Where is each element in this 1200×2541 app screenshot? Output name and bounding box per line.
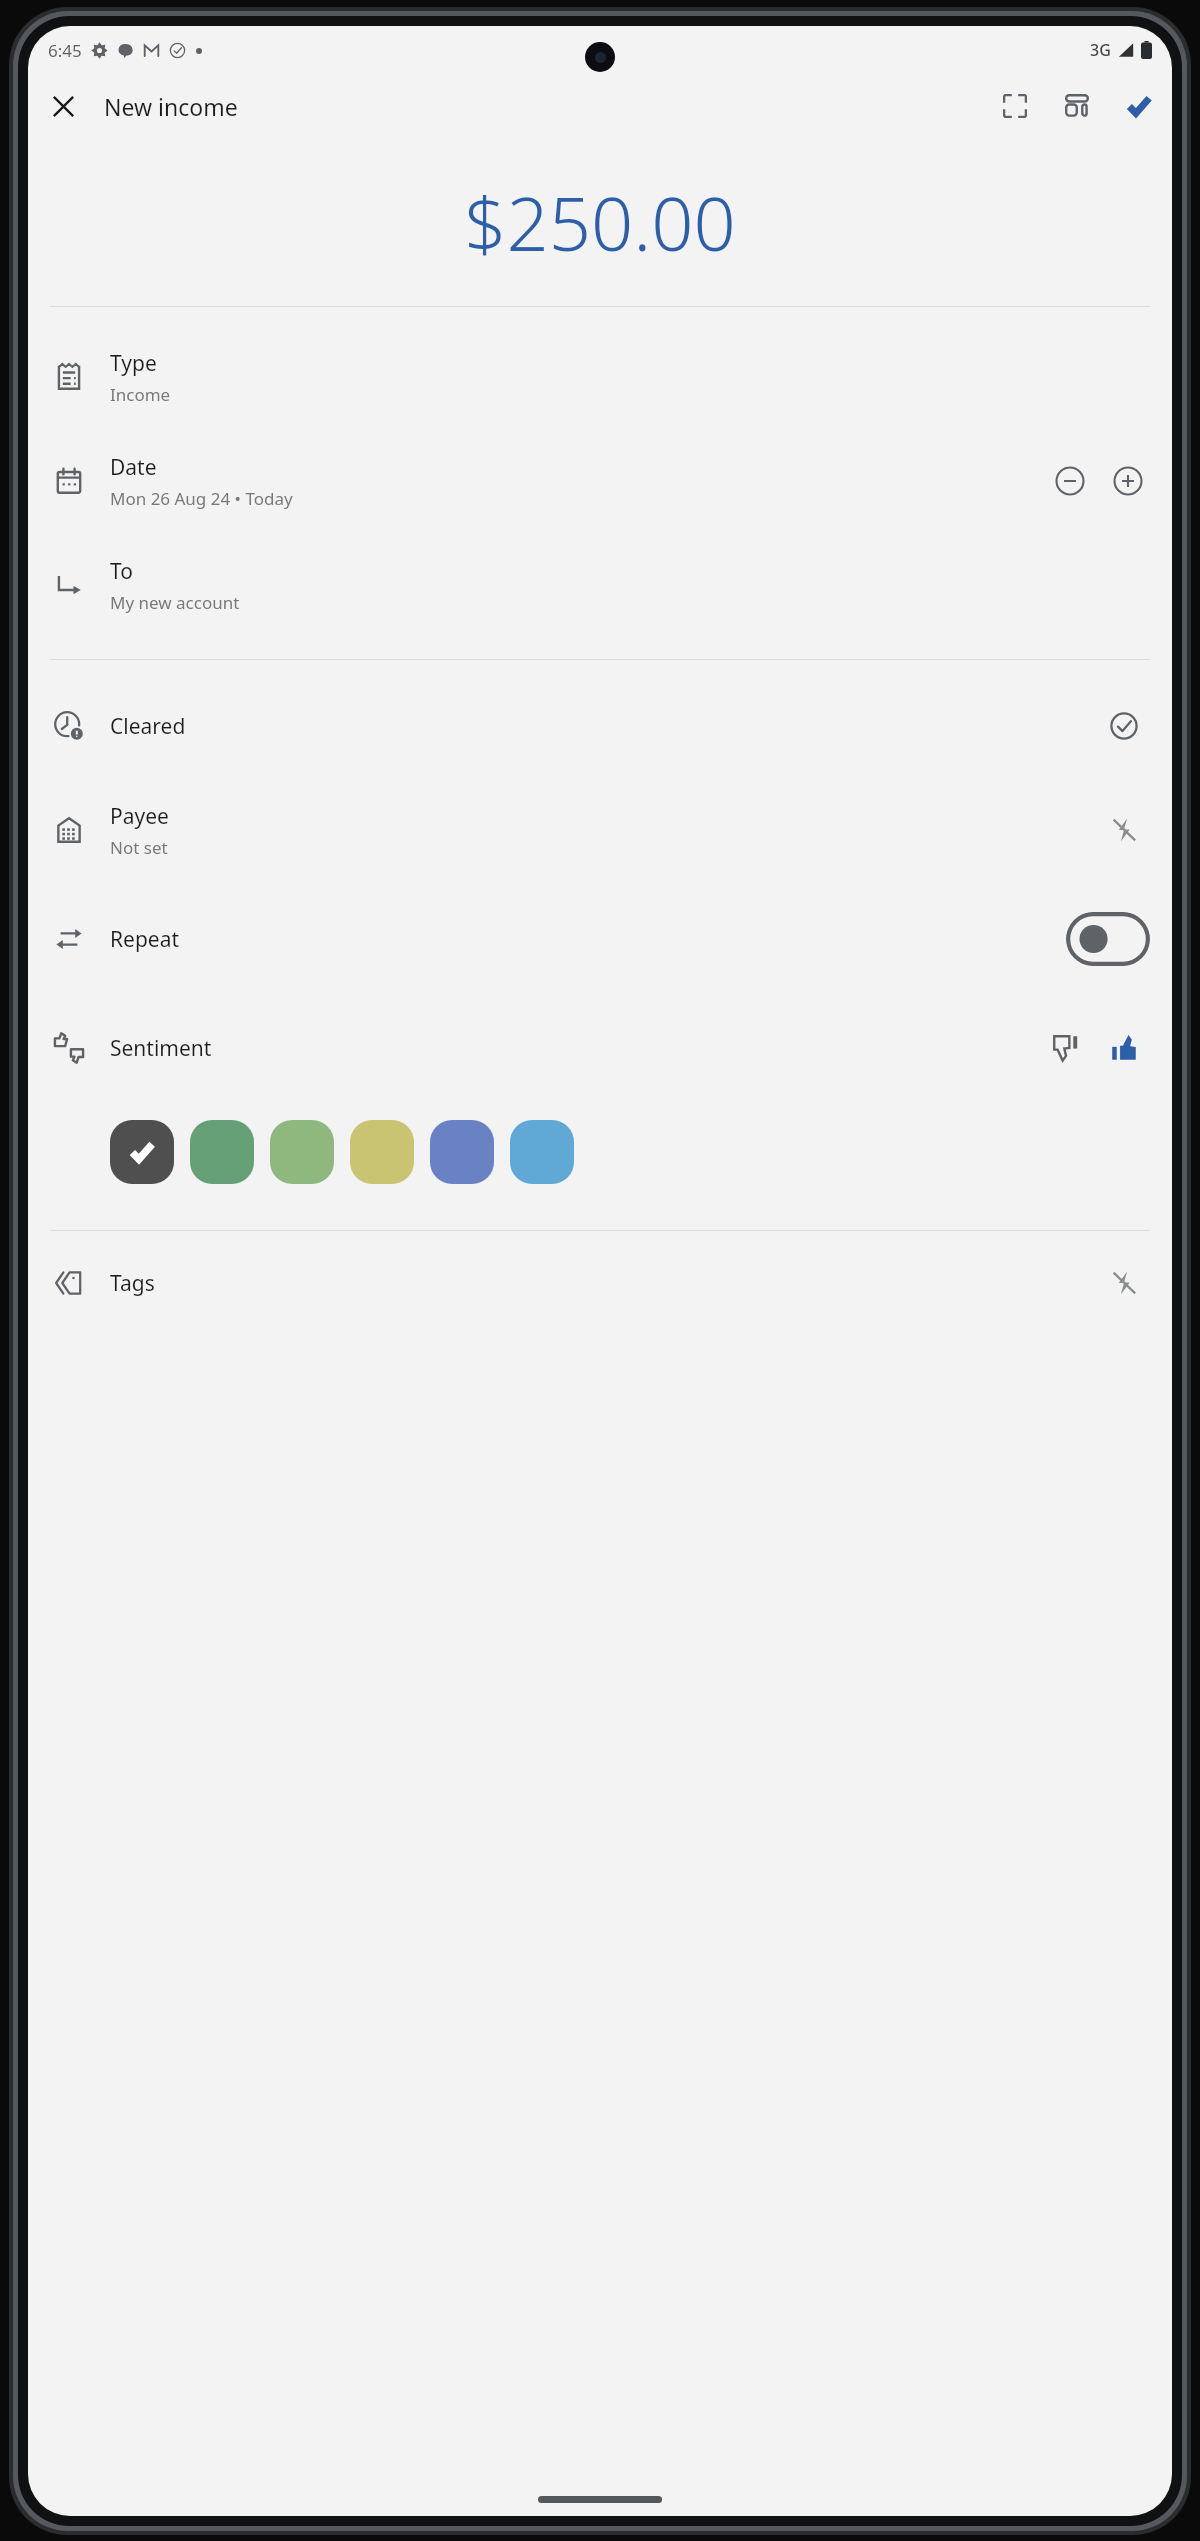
button[interactable]: Next day xyxy=(1102,455,1154,507)
staticText: 3G xyxy=(1090,39,1111,61)
button[interactable]: Close xyxy=(38,81,88,131)
staticText: Repeat xyxy=(110,925,180,954)
staticText: $250.00 xyxy=(464,172,736,273)
button[interactable]: Sentiment xyxy=(28,996,1172,1100)
staticText: To xyxy=(110,557,133,586)
button[interactable]: Cleared xyxy=(28,674,1172,778)
button[interactable]: To xyxy=(28,533,1172,637)
staticText: 6:45 xyxy=(48,39,82,62)
button[interactable]: Tags off xyxy=(1098,1257,1150,1309)
button[interactable]: Date xyxy=(28,429,1172,533)
button[interactable]: Repeat toggle xyxy=(1066,912,1150,966)
staticText: Date xyxy=(110,453,157,482)
staticText: Mon 26 Aug 24 • Today xyxy=(110,487,293,510)
staticText: Income xyxy=(110,383,171,406)
button[interactable]: $250.00 xyxy=(28,138,1172,306)
button[interactable]: Cleared xyxy=(1098,700,1150,752)
staticText: Not set xyxy=(110,836,168,859)
staticText: New income xyxy=(104,91,238,122)
button[interactable]: Save xyxy=(1114,81,1164,131)
staticText: Sentiment xyxy=(110,1034,212,1063)
button[interactable]: Repeat xyxy=(28,882,1172,996)
button[interactable]: Payee off xyxy=(1098,804,1150,856)
button[interactable]: Color option 6 xyxy=(510,1120,574,1184)
button[interactable]: Previous day xyxy=(1044,455,1096,507)
staticText: Payee xyxy=(110,802,169,831)
staticText: My new account xyxy=(110,591,240,614)
button[interactable]: Fullscreen xyxy=(990,81,1040,131)
button[interactable]: Color option 4 xyxy=(350,1120,414,1184)
button[interactable]: Layout xyxy=(1052,81,1102,131)
staticText: Tags xyxy=(110,1269,155,1298)
button[interactable]: Color option 5 xyxy=(430,1120,494,1184)
button[interactable]: Color option 2 xyxy=(190,1120,254,1184)
button[interactable]: Thumbs down xyxy=(1040,1022,1092,1074)
button[interactable]: Tags xyxy=(28,1231,1172,1335)
button[interactable]: Payee xyxy=(28,778,1172,882)
staticText: Type xyxy=(110,349,157,378)
button[interactable]: Thumbs up xyxy=(1098,1022,1150,1074)
button[interactable]: Color option 1 xyxy=(110,1120,174,1184)
staticText: Cleared xyxy=(110,712,186,741)
button[interactable]: Color option 3 xyxy=(270,1120,334,1184)
button[interactable]: Type xyxy=(28,325,1172,429)
